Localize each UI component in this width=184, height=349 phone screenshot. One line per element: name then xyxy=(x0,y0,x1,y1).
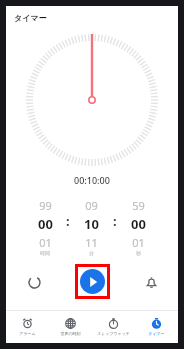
staticText: タイマー xyxy=(14,13,47,23)
staticText: : xyxy=(66,212,70,230)
staticText: 00:10:00 xyxy=(74,174,110,186)
button[interactable]: 59 xyxy=(119,198,158,256)
button[interactable]: 開始 xyxy=(80,269,105,294)
staticText: 09 xyxy=(85,198,98,213)
staticText: 秒 xyxy=(136,250,141,256)
staticText: 01 xyxy=(39,235,52,250)
staticText: 59 xyxy=(132,198,145,213)
button[interactable]: リセット xyxy=(20,268,48,296)
button[interactable]: タイマー xyxy=(135,318,178,336)
staticText: : xyxy=(113,212,117,230)
staticText: 分 xyxy=(89,250,94,256)
staticText: ストップウォッチ xyxy=(97,331,130,336)
staticText: 10 xyxy=(84,215,99,233)
button[interactable]: 世界の時刻 xyxy=(49,318,92,336)
staticText: アラーム xyxy=(19,331,36,336)
button[interactable]: ストップウォッチ xyxy=(92,318,135,336)
staticText: 世界の時刻 xyxy=(60,331,81,336)
staticText: 01 xyxy=(132,235,145,250)
button[interactable]: 09 xyxy=(72,198,111,256)
staticText: 時間 xyxy=(40,250,50,256)
staticText: 00 xyxy=(131,215,146,233)
staticText: 99 xyxy=(39,198,52,213)
staticText: 11 xyxy=(85,235,98,250)
staticText: タイマー xyxy=(148,331,165,336)
button[interactable]: アラーム xyxy=(6,318,49,336)
button[interactable]: アラーム音 xyxy=(137,268,165,296)
button[interactable]: 99 xyxy=(26,198,64,256)
staticText: 00 xyxy=(38,215,53,233)
